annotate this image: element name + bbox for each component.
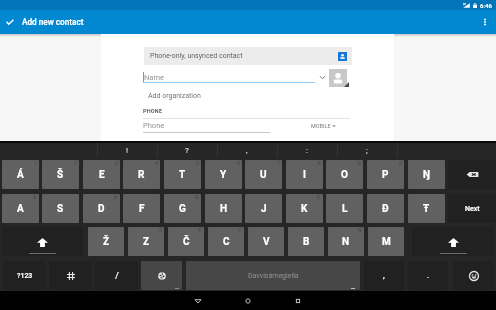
button[interactable]: P: [367, 160, 404, 189]
button[interactable]: D: [83, 194, 120, 223]
button[interactable]: R: [123, 160, 160, 189]
button[interactable]: Ž: [88, 227, 124, 256]
button[interactable]: L: [326, 194, 363, 223]
button[interactable]: Slash: [95, 261, 138, 290]
button[interactable]: Home: [223, 291, 273, 310]
staticText: Ŧ: [423, 203, 430, 215]
staticText: ;: [366, 146, 368, 155]
button[interactable]: Shift: [2, 227, 83, 256]
button[interactable]: Đ: [367, 194, 404, 223]
staticText: :: [306, 146, 308, 155]
button[interactable]: C: [208, 227, 244, 256]
button[interactable]: Y: [205, 160, 242, 189]
button[interactable]: Ŧ: [408, 194, 445, 223]
button[interactable]: J: [245, 194, 282, 223]
staticText: D: [98, 203, 105, 215]
staticText: A: [17, 203, 24, 215]
button[interactable]: I: [286, 160, 323, 189]
button[interactable]: Phone-only, unsynced contact: [144, 47, 352, 65]
button[interactable]: Add photo: [329, 69, 347, 87]
staticText: Davvisámegiella: [248, 272, 299, 280]
button[interactable]: U: [245, 160, 282, 189]
button[interactable]: :: [287, 142, 327, 159]
staticText: Phone-only, unsynced contact: [150, 52, 243, 60]
staticText: 6:46: [480, 2, 492, 9]
staticText: Y: [220, 169, 227, 181]
button[interactable]: Ŋ: [408, 160, 445, 189]
staticText: Ð: [114, 194, 118, 200]
staticText: 1: [34, 160, 37, 166]
button[interactable]: G: [164, 194, 201, 223]
button[interactable]: B: [288, 227, 324, 256]
staticText: Ŋ: [423, 169, 431, 181]
staticText: ?123: [17, 272, 33, 280]
button[interactable]: Keyboard layout: [49, 261, 92, 290]
button[interactable]: Next: [448, 194, 496, 223]
button[interactable]: !: [107, 142, 147, 159]
staticText: 5: [196, 160, 199, 166]
button[interactable]: F: [123, 194, 160, 223]
button[interactable]: MOBILE: [311, 123, 336, 129]
staticText: C: [223, 236, 230, 248]
staticText: MOBILE: [311, 123, 331, 129]
staticText: !: [126, 146, 129, 155]
staticText: G: [179, 203, 186, 215]
staticText: I: [303, 169, 306, 181]
staticText: Ń: [358, 227, 362, 233]
staticText: Z: [143, 236, 150, 248]
button[interactable]: Š: [42, 160, 79, 189]
button[interactable]: Comma: [364, 261, 404, 290]
button[interactable]: Space: [186, 261, 360, 290]
button[interactable]: H: [205, 194, 242, 223]
staticText: O: [341, 169, 348, 181]
button[interactable]: Shift: [412, 227, 494, 256]
staticText: Next: [465, 205, 480, 213]
button[interactable]: T: [164, 160, 201, 189]
button[interactable]: More options: [474, 10, 496, 34]
staticText: E: [99, 169, 105, 181]
button[interactable]: K: [286, 194, 323, 223]
staticText: 7: [277, 160, 280, 166]
button[interactable]: Z: [128, 227, 164, 256]
button[interactable]: Back: [173, 291, 223, 310]
staticText: X: [198, 227, 202, 233]
button[interactable]: Save contact: [0, 10, 19, 34]
staticText: L: [342, 203, 348, 215]
staticText: Name: [144, 73, 164, 82]
staticText: P: [382, 169, 389, 181]
button[interactable]: Backspace: [448, 160, 496, 189]
staticText: Ç: [238, 227, 242, 233]
staticText: /: [115, 270, 119, 281]
button[interactable]: O: [326, 160, 363, 189]
staticText: N: [342, 236, 350, 248]
button[interactable]: Period: [408, 261, 448, 290]
button[interactable]: Symbols: [3, 261, 46, 290]
staticText: F: [139, 203, 145, 215]
staticText: 2: [74, 160, 77, 166]
button[interactable]: S: [42, 194, 79, 223]
button[interactable]: A: [2, 194, 39, 223]
button[interactable]: V: [248, 227, 284, 256]
staticText: Á: [17, 169, 24, 181]
button[interactable]: ;: [347, 142, 387, 159]
button[interactable]: Emoji: [453, 261, 494, 290]
button[interactable]: N: [328, 227, 364, 256]
staticText: S: [57, 203, 64, 215]
button[interactable]: ,: [227, 142, 267, 159]
button[interactable]: E: [83, 160, 120, 189]
button[interactable]: Recent apps: [273, 291, 323, 310]
staticText: R: [138, 169, 145, 181]
button[interactable]: ?: [167, 142, 207, 159]
staticText: Add new contact: [22, 17, 84, 27]
staticText: V: [263, 236, 270, 248]
staticText: Phone: [143, 121, 165, 130]
button[interactable]: Add organization: [148, 92, 201, 100]
staticText: Š: [57, 169, 64, 181]
button[interactable]: Change language: [141, 261, 182, 290]
button[interactable]: M: [368, 227, 404, 256]
button[interactable]: Á: [2, 160, 39, 189]
button[interactable]: Č: [168, 227, 204, 256]
staticText: H: [220, 203, 228, 215]
staticText: .: [427, 270, 430, 281]
staticText: 3: [159, 227, 162, 233]
